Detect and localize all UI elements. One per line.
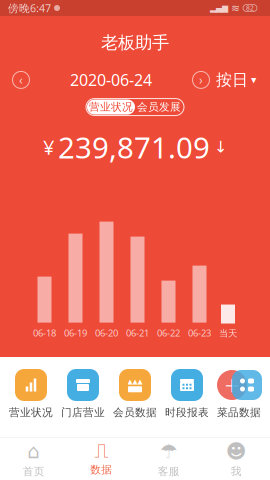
button[interactable]: 2020-06-24: [64, 63, 158, 96]
button[interactable]: 会员发展: [135, 99, 183, 114]
staticText: 239,871.09: [58, 127, 210, 166]
staticText: ›: [199, 72, 203, 88]
button[interactable]: Next day: [186, 65, 216, 95]
staticText: ▾: [251, 74, 256, 86]
button[interactable]: ☂: [135, 438, 202, 480]
staticText: 06-19: [64, 327, 87, 339]
staticText: 当天: [219, 327, 237, 339]
button[interactable]: 门店营业: [57, 369, 109, 419]
button[interactable]: +: [213, 369, 265, 419]
staticText: 菜品数据: [217, 406, 261, 419]
staticText: ⎍: [94, 442, 108, 461]
staticText: ≋: [231, 2, 240, 14]
staticText: ☻: [226, 440, 247, 463]
button[interactable]: ⌂: [0, 438, 67, 480]
staticText: 数据: [90, 463, 112, 476]
staticText: 2020-06-24: [70, 69, 152, 90]
button[interactable]: 按日: [216, 64, 264, 96]
staticText: 06-18: [33, 327, 56, 339]
staticText: ‹: [19, 72, 23, 88]
staticText: ⌂: [27, 440, 40, 463]
staticText: 我: [231, 465, 242, 478]
button[interactable]: Previous day: [6, 65, 36, 95]
staticText: ▂▄▆: [210, 3, 228, 13]
staticText: ☂: [160, 440, 178, 463]
staticText: 时段报表: [165, 406, 209, 419]
staticText: 06-21: [126, 327, 149, 339]
staticText: 06-22: [157, 327, 180, 339]
staticText: 06-20: [95, 327, 118, 339]
staticText: 营业状况: [89, 100, 133, 114]
staticText: 客服: [158, 465, 180, 478]
staticText: 首页: [23, 465, 45, 478]
staticText: 会员发展: [137, 100, 181, 114]
button[interactable]: ⎍: [67, 438, 135, 480]
staticText: 门店营业: [61, 406, 105, 419]
button[interactable]: ▲▲▲: [109, 369, 161, 419]
staticText: 老板助手: [101, 32, 169, 53]
button[interactable]: 时段报表: [161, 369, 213, 419]
staticText: ↓: [214, 138, 227, 156]
staticText: 傍晚6:47: [8, 1, 51, 15]
staticText: ▲▲▲: [127, 378, 142, 385]
staticText: ¥: [43, 134, 54, 160]
button[interactable]: ☻: [202, 438, 270, 480]
staticText: 会员数据: [113, 406, 157, 419]
button[interactable]: 营业状况: [87, 99, 135, 114]
button[interactable]: 营业状况: [5, 369, 57, 419]
staticText: 82: [246, 4, 254, 12]
staticText: 营业状况: [9, 406, 53, 419]
staticText: +: [224, 367, 239, 403]
staticText: 按日: [216, 70, 248, 90]
staticText: 06-23: [188, 327, 211, 339]
